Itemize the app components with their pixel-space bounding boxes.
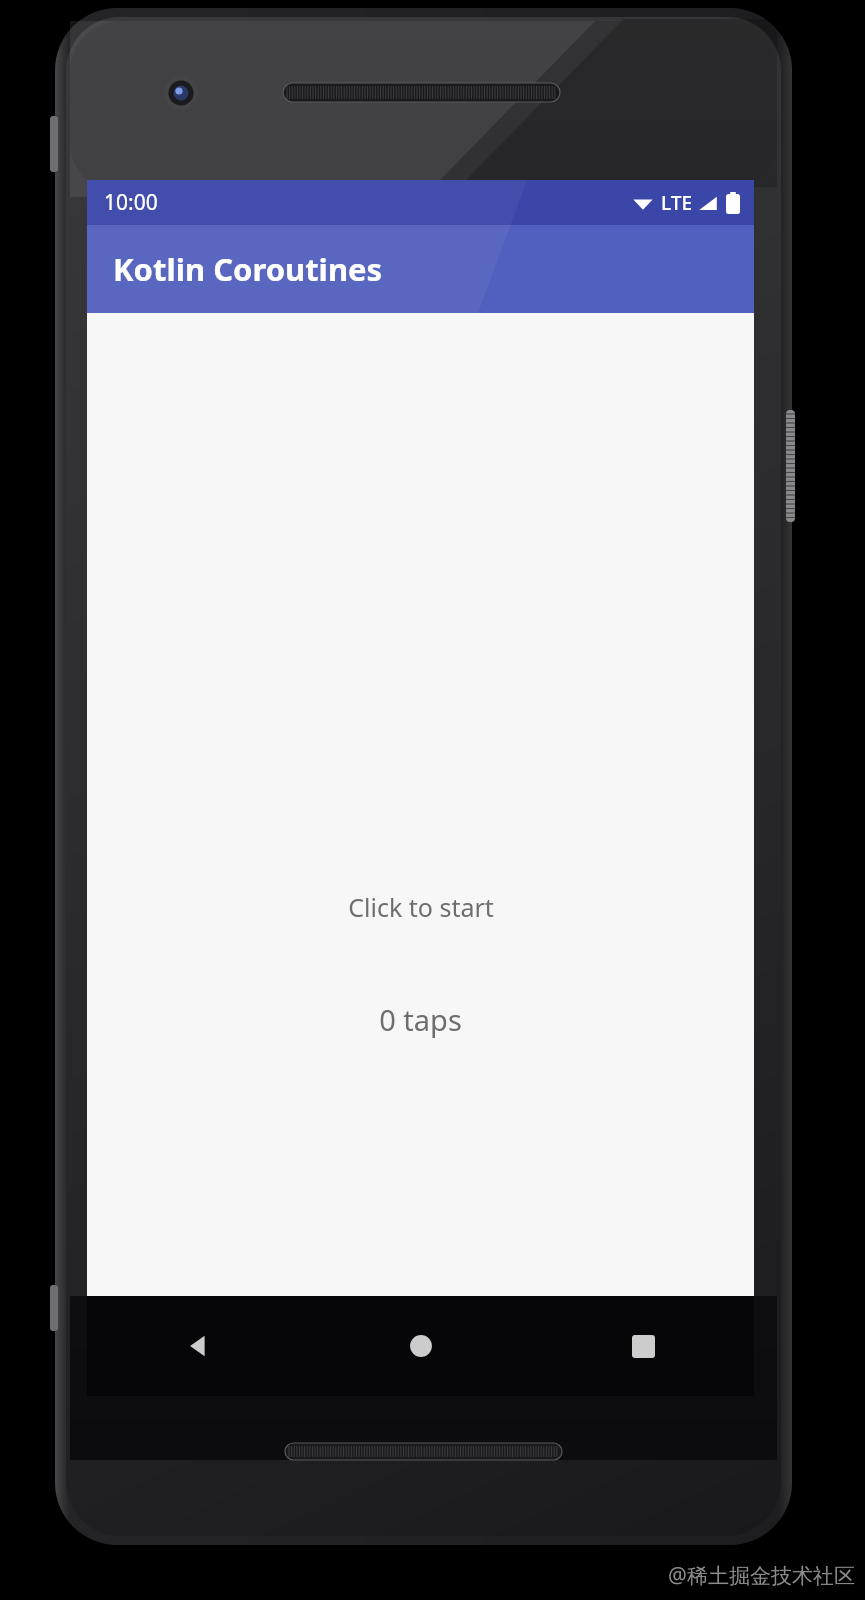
staticText: Click to start: [348, 890, 494, 924]
button[interactable]: Click to start: [87, 313, 754, 1296]
staticText: 10:00: [104, 188, 158, 217]
button[interactable]: Home: [310, 1296, 532, 1396]
button[interactable]: Recent apps: [532, 1296, 754, 1396]
staticText: 0 taps: [379, 1000, 462, 1039]
staticText: @稀土掘金技术社区: [668, 1561, 855, 1590]
staticText: Kotlin Coroutines: [113, 248, 383, 290]
staticText: LTE: [661, 190, 693, 216]
button[interactable]: Back: [87, 1296, 310, 1396]
